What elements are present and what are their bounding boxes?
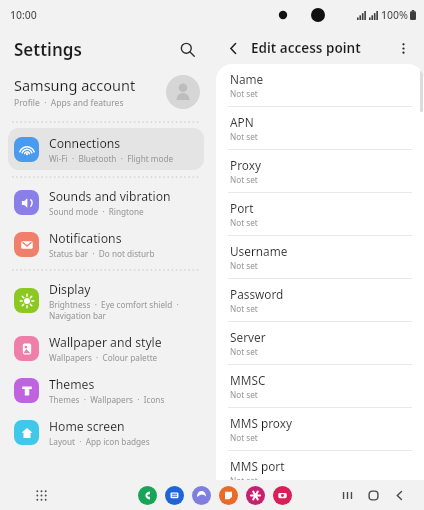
staticText: Name bbox=[230, 71, 264, 87]
staticText: Layout · App icon badges bbox=[49, 436, 150, 447]
staticText: Home screen bbox=[49, 418, 125, 435]
staticText: Proxy bbox=[230, 157, 261, 173]
button[interactable]: Sounds and vibration bbox=[0, 181, 212, 223]
staticText: Not set bbox=[230, 88, 258, 99]
button[interactable]: Back bbox=[386, 482, 412, 508]
button[interactable]: MMS port bbox=[216, 451, 424, 493]
button[interactable]: Port bbox=[216, 193, 424, 235]
staticText: Sound mode · Ringtone bbox=[49, 206, 144, 217]
staticText: Display bbox=[49, 281, 91, 298]
button[interactable]: MSG bbox=[165, 486, 184, 505]
staticText: Not set bbox=[230, 260, 258, 271]
staticText: Wi-Fi · Bluetooth · Flight mode bbox=[49, 153, 174, 164]
button[interactable]: Themes bbox=[0, 369, 212, 411]
button[interactable]: MMS proxy bbox=[216, 408, 424, 450]
staticText: Not set bbox=[230, 217, 258, 228]
staticText: Edit access point bbox=[251, 39, 390, 57]
staticText: Wallpaper and style bbox=[49, 334, 162, 351]
button[interactable]: APN bbox=[216, 107, 424, 149]
staticText: 10:00 bbox=[10, 8, 37, 22]
staticText: Not set bbox=[230, 432, 258, 443]
staticText: Wallpapers · Colour palette bbox=[49, 352, 158, 363]
staticText: MMSC bbox=[230, 372, 266, 388]
button[interactable]: Home bbox=[360, 482, 386, 508]
staticText: Status bar · Do not disturb bbox=[49, 248, 155, 259]
staticText: Connections bbox=[49, 135, 121, 152]
staticText: Not set bbox=[230, 174, 258, 185]
staticText: Samsung account bbox=[14, 75, 136, 95]
staticText: MMS proxy bbox=[230, 415, 292, 431]
staticText: Not set bbox=[230, 346, 258, 357]
staticText: Settings bbox=[14, 38, 172, 61]
button[interactable]: Samsung account bbox=[0, 68, 212, 116]
staticText: Not set bbox=[230, 131, 258, 142]
button[interactable]: Connections bbox=[8, 128, 204, 170]
button[interactable]: STAR bbox=[246, 486, 265, 505]
button[interactable]: Back bbox=[220, 35, 246, 61]
button[interactable]: NET bbox=[192, 486, 211, 505]
button[interactable]: MMSC bbox=[216, 365, 424, 407]
button[interactable]: PHONE bbox=[138, 486, 157, 505]
staticText: Not set bbox=[230, 475, 258, 486]
button[interactable]: Display bbox=[0, 274, 212, 327]
staticText: Not set bbox=[230, 389, 258, 400]
staticText: Username bbox=[230, 243, 288, 259]
staticText: Server bbox=[230, 329, 266, 345]
button[interactable]: Username bbox=[216, 236, 424, 278]
button[interactable]: Search bbox=[172, 34, 202, 64]
button[interactable]: Wallpaper and style bbox=[0, 327, 212, 369]
button[interactable]: Name bbox=[216, 64, 424, 106]
staticText: Password bbox=[230, 286, 284, 302]
button[interactable]: CAM bbox=[273, 486, 292, 505]
staticText: 100% bbox=[381, 8, 408, 22]
button[interactable]: More options bbox=[390, 35, 416, 61]
staticText: Notifications bbox=[49, 230, 122, 247]
staticText: Not set bbox=[230, 303, 258, 314]
staticText: Themes · Wallpapers · Icons bbox=[49, 394, 165, 405]
staticText: Port bbox=[230, 200, 254, 216]
staticText: MMS port bbox=[230, 458, 285, 474]
staticText: Profile · Apps and features bbox=[14, 97, 124, 109]
staticText: Themes bbox=[49, 376, 95, 393]
staticText: Sounds and vibration bbox=[49, 188, 171, 205]
button[interactable]: NOTE bbox=[219, 486, 238, 505]
staticText: Brightness · Eye comfort shield · Naviga… bbox=[49, 299, 179, 321]
button[interactable]: Notifications bbox=[0, 223, 212, 265]
button[interactable]: Password bbox=[216, 279, 424, 321]
button[interactable]: Proxy bbox=[216, 150, 424, 192]
button[interactable]: Apps bbox=[30, 484, 52, 506]
button[interactable]: Server bbox=[216, 322, 424, 364]
button[interactable]: Home screen bbox=[0, 411, 212, 453]
button[interactable]: Recent apps bbox=[334, 482, 360, 508]
staticText: APN bbox=[230, 114, 254, 130]
